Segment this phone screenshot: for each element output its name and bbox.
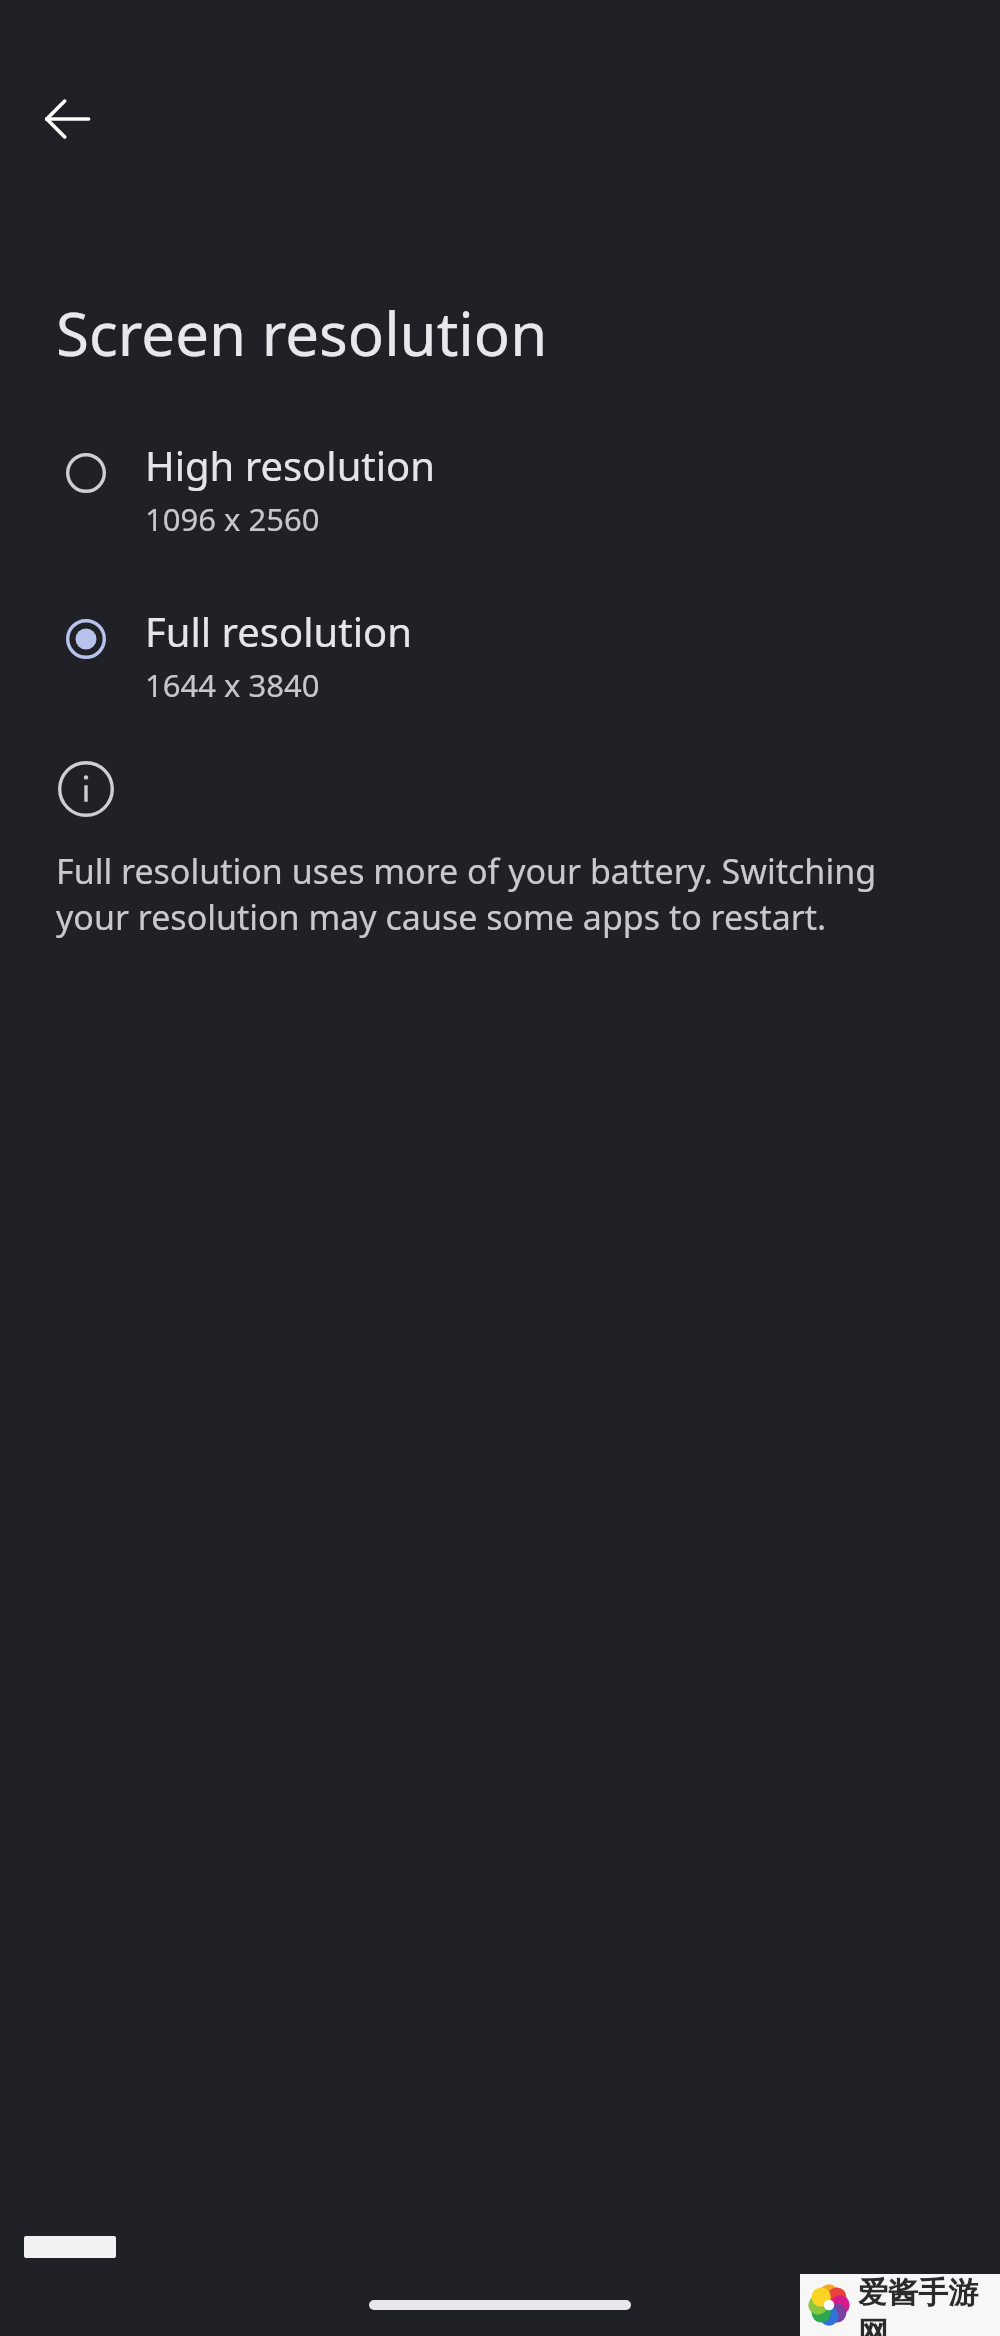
staticText: High resolution: [145, 438, 436, 492]
staticText: 1096 x 2560: [145, 498, 320, 540]
staticText: Full resolution uses more of your batter…: [56, 848, 944, 940]
staticText: 爱酱手游网: [858, 2274, 1000, 2336]
staticText: 1644 x 3840: [145, 664, 320, 706]
staticText: Screen resolution: [56, 292, 548, 374]
button[interactable]: Back: [22, 74, 112, 164]
button[interactable]: High resolution: [0, 432, 1000, 546]
button[interactable]: Full resolution: [0, 598, 1000, 712]
staticText: Full resolution: [145, 604, 412, 658]
